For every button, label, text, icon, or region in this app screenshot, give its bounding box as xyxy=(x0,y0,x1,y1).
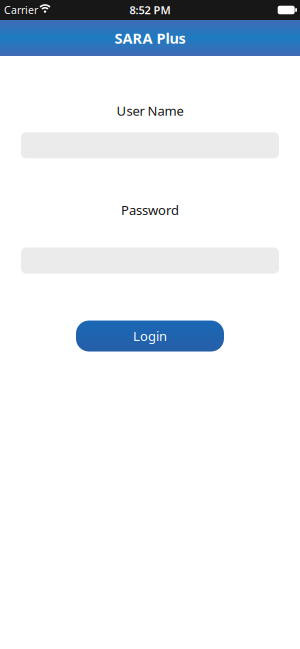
staticText: User Name xyxy=(116,102,183,119)
staticText: SARA Plus xyxy=(114,28,185,48)
staticText: 8:52 PM xyxy=(129,3,170,17)
staticText: Carrier xyxy=(4,3,38,17)
button[interactable]: Login xyxy=(76,320,224,351)
staticText: Password xyxy=(121,201,179,219)
staticText: Login xyxy=(133,327,167,345)
